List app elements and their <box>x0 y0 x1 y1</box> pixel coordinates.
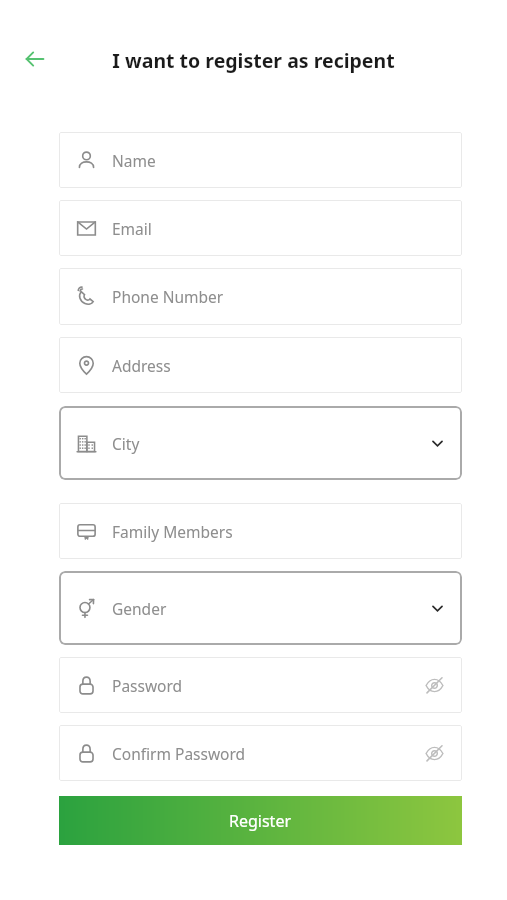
button[interactable]: Gender <box>59 571 462 645</box>
button[interactable]: Email <box>59 200 462 256</box>
button[interactable]: Confirm Password <box>59 725 462 781</box>
button[interactable]: Back <box>16 40 54 78</box>
button[interactable]: City <box>59 406 462 480</box>
staticText: I want to register as recipent <box>112 47 395 74</box>
staticText: Gender <box>112 598 167 619</box>
button[interactable]: Address <box>59 337 462 393</box>
staticText: Phone Number <box>112 286 224 307</box>
staticText: Name <box>112 150 156 171</box>
button[interactable]: Show password <box>422 673 446 697</box>
button[interactable]: Show password <box>422 741 446 765</box>
staticText: Family Members <box>112 521 233 542</box>
staticText: Register <box>229 810 292 832</box>
staticText: Email <box>112 218 152 239</box>
button[interactable]: Phone Number <box>59 268 462 325</box>
button[interactable]: Register <box>59 796 462 845</box>
staticText: Address <box>112 355 171 376</box>
button[interactable]: Password <box>59 657 462 713</box>
button[interactable]: Name <box>59 132 462 188</box>
button[interactable]: Family Members <box>59 503 462 559</box>
staticText: Confirm Password <box>112 743 246 764</box>
staticText: City <box>112 433 140 454</box>
staticText: Password <box>112 675 183 696</box>
